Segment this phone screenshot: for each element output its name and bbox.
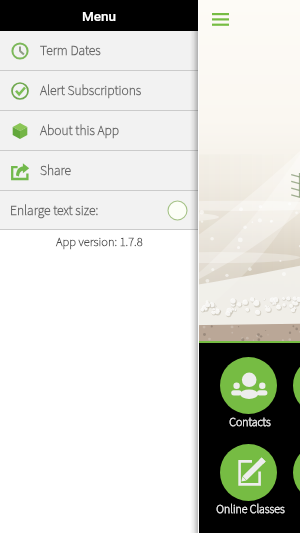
button[interactable]: Online Classes bbox=[220, 444, 277, 501]
button[interactable]: Enlarge text size: bbox=[0, 191, 199, 229]
staticText: Enlarge text size: bbox=[10, 201, 99, 220]
button[interactable]: Open navigation menu bbox=[201, 2, 239, 35]
staticText: About this App bbox=[40, 121, 120, 140]
button[interactable]: Study bbox=[293, 444, 300, 501]
staticText: Alert Subscriptions bbox=[40, 81, 142, 100]
staticText: Online Classes bbox=[216, 501, 285, 518]
staticText: Contacts bbox=[229, 414, 271, 431]
staticText: Term Dates bbox=[40, 41, 101, 60]
button[interactable]: Staff bbox=[293, 357, 300, 414]
staticText: Share bbox=[40, 161, 72, 180]
button[interactable]: Alert Subscriptions bbox=[0, 71, 199, 110]
button[interactable]: Contacts bbox=[220, 357, 277, 414]
staticText: App version: 1.7.8 bbox=[56, 233, 143, 251]
staticText: Menu bbox=[82, 8, 117, 24]
button[interactable]: Term Dates bbox=[0, 31, 199, 70]
button[interactable]: About this App bbox=[0, 111, 199, 150]
button[interactable]: Share bbox=[0, 151, 199, 190]
